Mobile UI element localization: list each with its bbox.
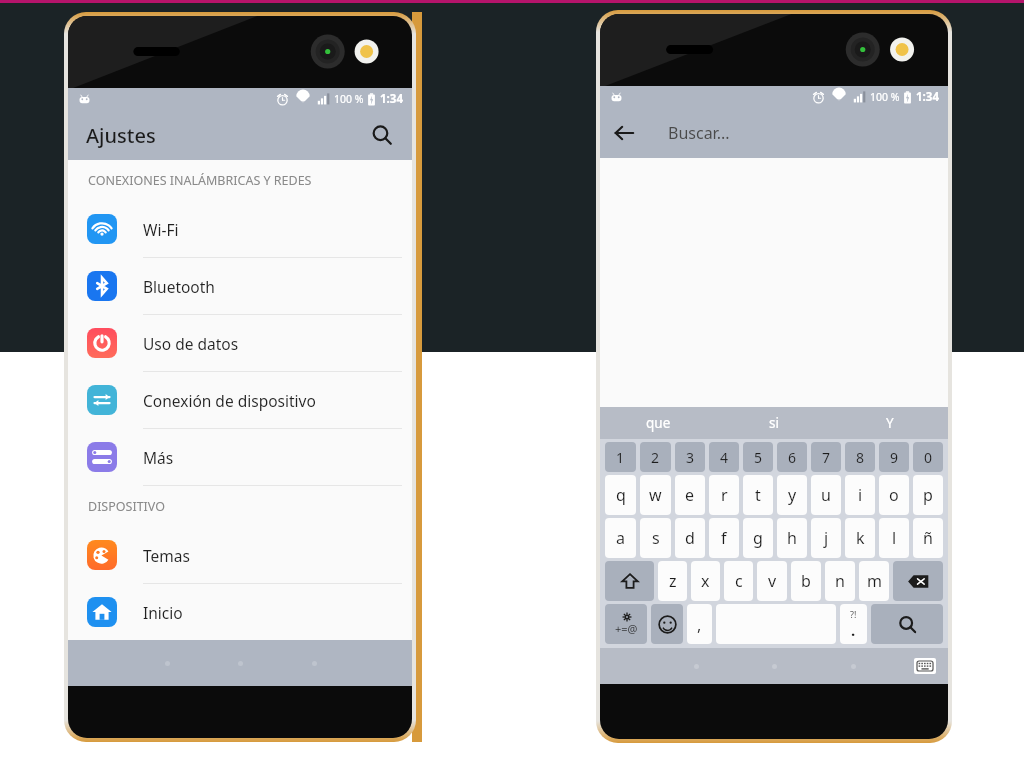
button[interactable]: p	[913, 475, 943, 515]
button[interactable]: ,	[687, 604, 712, 644]
button[interactable]: d	[675, 518, 705, 558]
button[interactable]: n	[825, 561, 855, 601]
button[interactable]: Uso de datos	[68, 315, 412, 372]
button[interactable]: c	[724, 561, 753, 601]
staticText: t	[755, 484, 761, 506]
button[interactable]: 2	[640, 442, 671, 472]
button[interactable]: b	[791, 561, 821, 601]
staticText: g	[753, 527, 763, 549]
staticText: 3	[686, 448, 695, 467]
button[interactable]: a	[605, 518, 636, 558]
button[interactable]: Buscar	[360, 113, 404, 157]
staticText: r	[721, 484, 728, 506]
button[interactable]: +=@	[605, 604, 647, 644]
button[interactable]: 8	[845, 442, 875, 472]
button[interactable]: Mayúsculas	[605, 561, 654, 601]
staticText: CONEXIONES INALÁMBRICAS Y REDES	[88, 172, 312, 189]
staticText: d	[685, 527, 695, 549]
button[interactable]: Buscar...	[668, 108, 948, 158]
staticText: ñ	[923, 527, 933, 549]
button[interactable]: h	[777, 518, 807, 558]
button[interactable]: s	[640, 518, 671, 558]
button[interactable]: Emoji	[651, 604, 683, 644]
staticText: ?!	[850, 608, 857, 620]
button[interactable]: si	[716, 407, 832, 439]
staticText: Wi-Fi	[143, 219, 179, 240]
staticText: que	[646, 414, 671, 432]
button[interactable]: j	[811, 518, 841, 558]
button[interactable]: g	[743, 518, 773, 558]
staticText: .	[851, 620, 856, 640]
button[interactable]: 4	[709, 442, 739, 472]
staticText: +=@	[615, 621, 638, 636]
button[interactable]: 1	[605, 442, 636, 472]
button[interactable]: e	[675, 475, 705, 515]
staticText: a	[616, 527, 625, 549]
staticText: 2	[651, 448, 660, 467]
button[interactable]: 5	[743, 442, 773, 472]
button[interactable]: ?!	[840, 604, 867, 644]
staticText: Uso de datos	[143, 333, 239, 354]
button[interactable]: 7	[811, 442, 841, 472]
button[interactable]: Bluetooth	[68, 258, 412, 315]
button[interactable]: Temas	[68, 527, 412, 584]
staticText: Inicio	[143, 602, 183, 623]
staticText: j	[824, 527, 829, 549]
button[interactable]: Inicio	[68, 584, 412, 641]
button[interactable]: r	[709, 475, 739, 515]
button[interactable]: Wi-Fi	[68, 201, 412, 258]
button[interactable]: Borrar	[893, 561, 943, 601]
button[interactable]: 6	[777, 442, 807, 472]
button[interactable]: v	[757, 561, 787, 601]
staticText: p	[923, 484, 933, 506]
button[interactable]: que	[600, 407, 716, 439]
button[interactable]: i	[845, 475, 875, 515]
staticText: ,	[697, 614, 702, 636]
button[interactable]: ñ	[913, 518, 943, 558]
staticText: 100 %	[334, 92, 364, 106]
button[interactable]: 3	[675, 442, 705, 472]
button[interactable]: m	[859, 561, 889, 601]
button[interactable]: k	[845, 518, 875, 558]
staticText: n	[835, 570, 845, 592]
button[interactable]: z	[658, 561, 687, 601]
staticText: f	[721, 527, 727, 549]
staticText: h	[787, 527, 797, 549]
button[interactable]: t	[743, 475, 773, 515]
staticText: i	[858, 484, 863, 506]
staticText: s	[652, 527, 660, 549]
button[interactable]: x	[691, 561, 720, 601]
button[interactable]: 9	[879, 442, 909, 472]
staticText: Buscar...	[668, 122, 730, 144]
button[interactable]: Buscar	[871, 604, 943, 644]
button[interactable]: Ajustes	[68, 110, 412, 160]
button[interactable]: Más	[68, 429, 412, 486]
button[interactable]: 0	[913, 442, 943, 472]
staticText: q	[616, 484, 626, 506]
button[interactable]: Atrás	[600, 109, 648, 157]
staticText: 9	[890, 448, 899, 467]
staticText: Conexión de dispositivo	[143, 390, 316, 411]
staticText: Temas	[143, 545, 190, 566]
button[interactable]: Y	[832, 407, 948, 439]
button[interactable]: q	[605, 475, 636, 515]
button[interactable]: y	[777, 475, 807, 515]
staticText: v	[768, 570, 777, 592]
button[interactable]: f	[709, 518, 739, 558]
staticText: c	[735, 570, 743, 592]
staticText: e	[685, 484, 695, 506]
button[interactable]: Conexión de dispositivo	[68, 372, 412, 429]
button[interactable]: o	[879, 475, 909, 515]
button[interactable]: l	[879, 518, 909, 558]
button[interactable]: w	[640, 475, 671, 515]
button[interactable]: Teclado	[914, 658, 936, 674]
button[interactable]: u	[811, 475, 841, 515]
